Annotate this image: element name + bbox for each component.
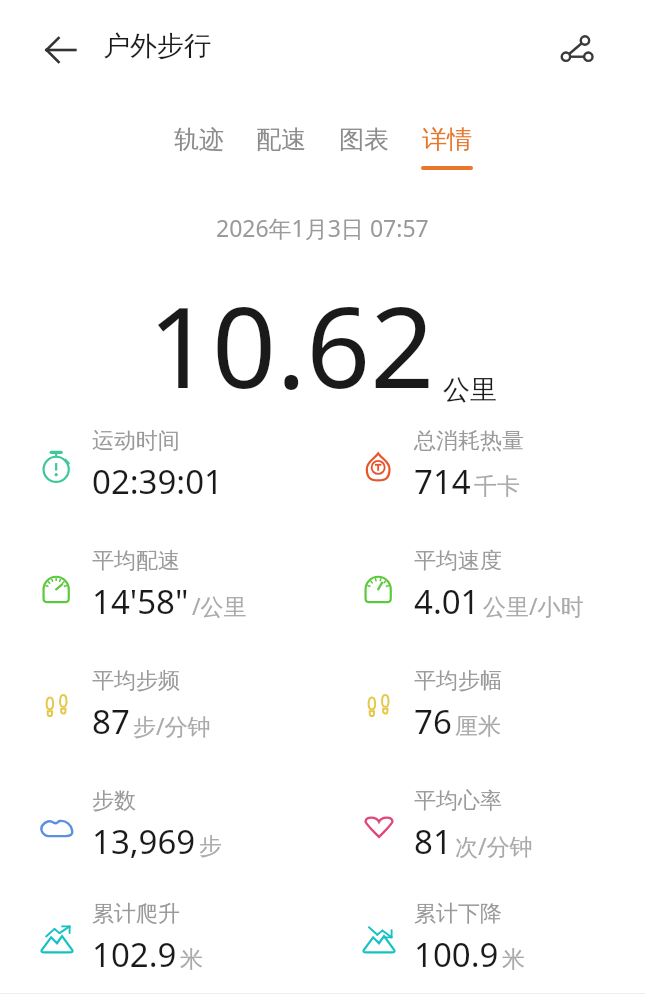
staticText: 13,969 <box>92 819 196 864</box>
staticText: 公里 <box>443 373 497 407</box>
staticText: 步 <box>199 832 222 861</box>
button[interactable]: 详情 <box>410 124 484 178</box>
staticText: 总消耗热量 <box>414 427 524 455</box>
button[interactable]: 运动时间 <box>0 427 322 537</box>
staticText: 户外步行 <box>103 29 211 63</box>
button[interactable]: 轨迹 <box>162 124 236 178</box>
staticText: 步数 <box>92 787 136 815</box>
staticText: 平均心率 <box>414 787 502 815</box>
staticText: 76 <box>414 699 452 744</box>
button[interactable]: 平均心率 <box>322 787 644 897</box>
button[interactable]: 总消耗热量 <box>322 427 644 537</box>
staticText: 2026年1月3日 07:57 <box>216 212 429 243</box>
staticText: 87 <box>92 699 130 744</box>
staticText: 02:39:01 <box>92 459 223 504</box>
staticText: 4.01 <box>414 579 480 624</box>
staticText: 轨迹 <box>174 124 224 155</box>
staticText: 米 <box>502 945 525 974</box>
staticText: 100.9 <box>414 932 499 977</box>
button[interactable]: 累计爬升 <box>0 900 322 1000</box>
staticText: 运动时间 <box>92 427 180 455</box>
staticText: 详情 <box>422 124 472 155</box>
button[interactable]: 步数 <box>0 787 322 897</box>
staticText: 平均步频 <box>92 667 180 695</box>
staticText: 14'58" <box>92 579 189 624</box>
staticText: 81 <box>414 819 452 864</box>
button[interactable]: 累计下降 <box>322 900 644 1000</box>
staticText: 10.62 <box>148 268 435 421</box>
staticText: 平均配速 <box>92 547 180 575</box>
staticText: 千卡 <box>474 472 520 501</box>
staticText: 图表 <box>339 124 389 155</box>
staticText: 平均步幅 <box>414 667 502 695</box>
staticText: 厘米 <box>455 712 501 741</box>
button[interactable]: Share <box>548 22 604 78</box>
staticText: 102.9 <box>92 932 177 977</box>
button[interactable]: 平均配速 <box>0 547 322 657</box>
staticText: /公里 <box>192 590 247 621</box>
button[interactable]: 平均步频 <box>0 667 322 777</box>
button[interactable]: Back <box>36 26 84 74</box>
staticText: 次/分钟 <box>455 830 533 861</box>
button[interactable]: 图表 <box>327 124 401 178</box>
button[interactable]: 配速 <box>244 124 318 178</box>
staticText: 714 <box>414 459 471 504</box>
staticText: 平均速度 <box>414 547 502 575</box>
button[interactable]: 平均速度 <box>322 547 644 657</box>
staticText: 米 <box>180 945 203 974</box>
button[interactable]: 平均步幅 <box>322 667 644 777</box>
staticText: 累计爬升 <box>92 900 180 928</box>
staticText: 配速 <box>256 124 306 155</box>
staticText: 累计下降 <box>414 900 502 928</box>
staticText: 步/分钟 <box>133 710 211 741</box>
staticText: 公里/小时 <box>483 590 584 621</box>
